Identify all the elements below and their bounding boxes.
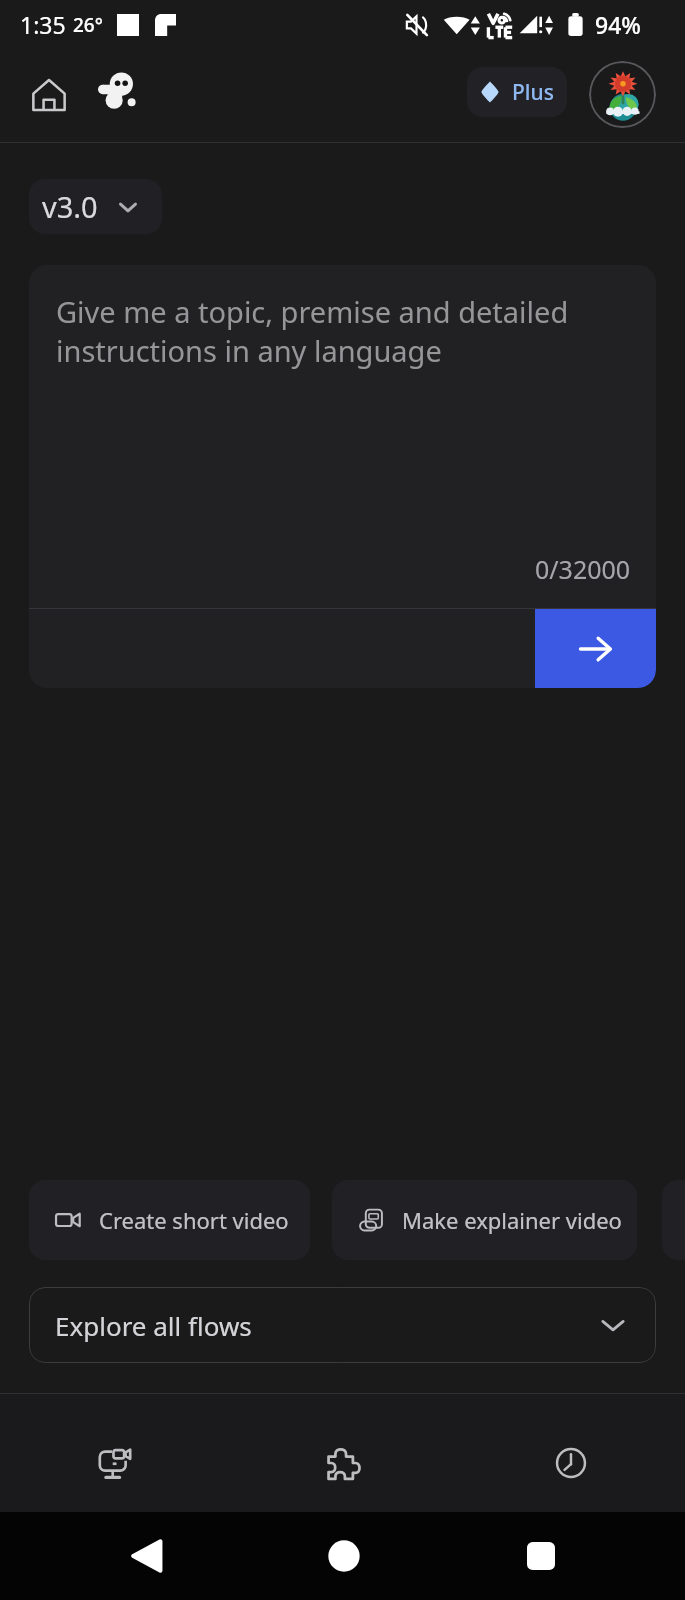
staticText: 1:35 xyxy=(20,9,66,40)
button[interactable]: Send xyxy=(535,609,656,688)
button[interactable]: Recents xyxy=(496,1512,585,1600)
button[interactable]: Home xyxy=(299,1512,388,1600)
staticText: Create short video xyxy=(99,1205,289,1235)
staticText: 0/32000 xyxy=(535,552,631,586)
button[interactable]: Home xyxy=(18,64,80,126)
staticText: 26° xyxy=(73,12,103,38)
staticText: Give me a topic, premise and detailed in… xyxy=(56,292,616,370)
button[interactable]: Back xyxy=(102,1512,191,1600)
button[interactable]: Create short video xyxy=(29,1180,310,1260)
staticText: v3.0 xyxy=(42,187,98,226)
button[interactable]: Profile xyxy=(589,61,656,128)
staticText: Make explainer video xyxy=(402,1205,622,1235)
staticText: Plus xyxy=(512,78,554,107)
button[interactable]: Plugins xyxy=(229,1394,457,1512)
staticText: Explore all flows xyxy=(55,1308,252,1343)
button[interactable]: Plus xyxy=(467,67,567,117)
button[interactable]: Assistant xyxy=(82,56,152,126)
button[interactable]: Make explainer video xyxy=(332,1180,637,1260)
button[interactable]: Studio xyxy=(0,1394,229,1512)
button[interactable]: History xyxy=(457,1394,685,1512)
staticText: 94% xyxy=(595,9,641,40)
button[interactable]: v3.0 xyxy=(29,179,162,234)
button[interactable]: Explore all flows xyxy=(29,1287,656,1363)
